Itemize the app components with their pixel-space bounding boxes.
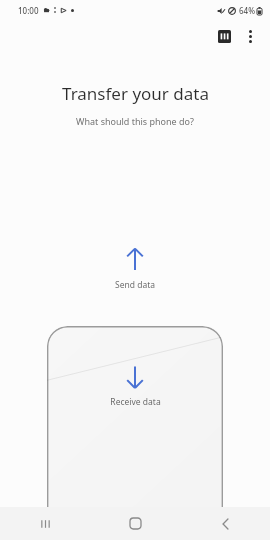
staticText: 64% [239, 5, 255, 16]
other: Send data [122, 246, 148, 272]
button[interactable]: Receive data [47, 326, 223, 507]
staticText: Send data [115, 279, 155, 291]
button[interactable]: Guide [212, 24, 236, 48]
button[interactable]: Back [180, 507, 270, 540]
button[interactable]: Recents [0, 507, 90, 540]
button[interactable]: More options [238, 24, 262, 48]
button[interactable]: Send data [0, 246, 270, 291]
staticText: What should this phone do? [76, 115, 194, 127]
other: Receive data [122, 364, 148, 390]
staticText: 10:00 [18, 5, 39, 16]
staticText: Receive data [110, 396, 161, 408]
button[interactable]: Home [90, 507, 180, 540]
staticText: Transfer your data [62, 82, 209, 105]
